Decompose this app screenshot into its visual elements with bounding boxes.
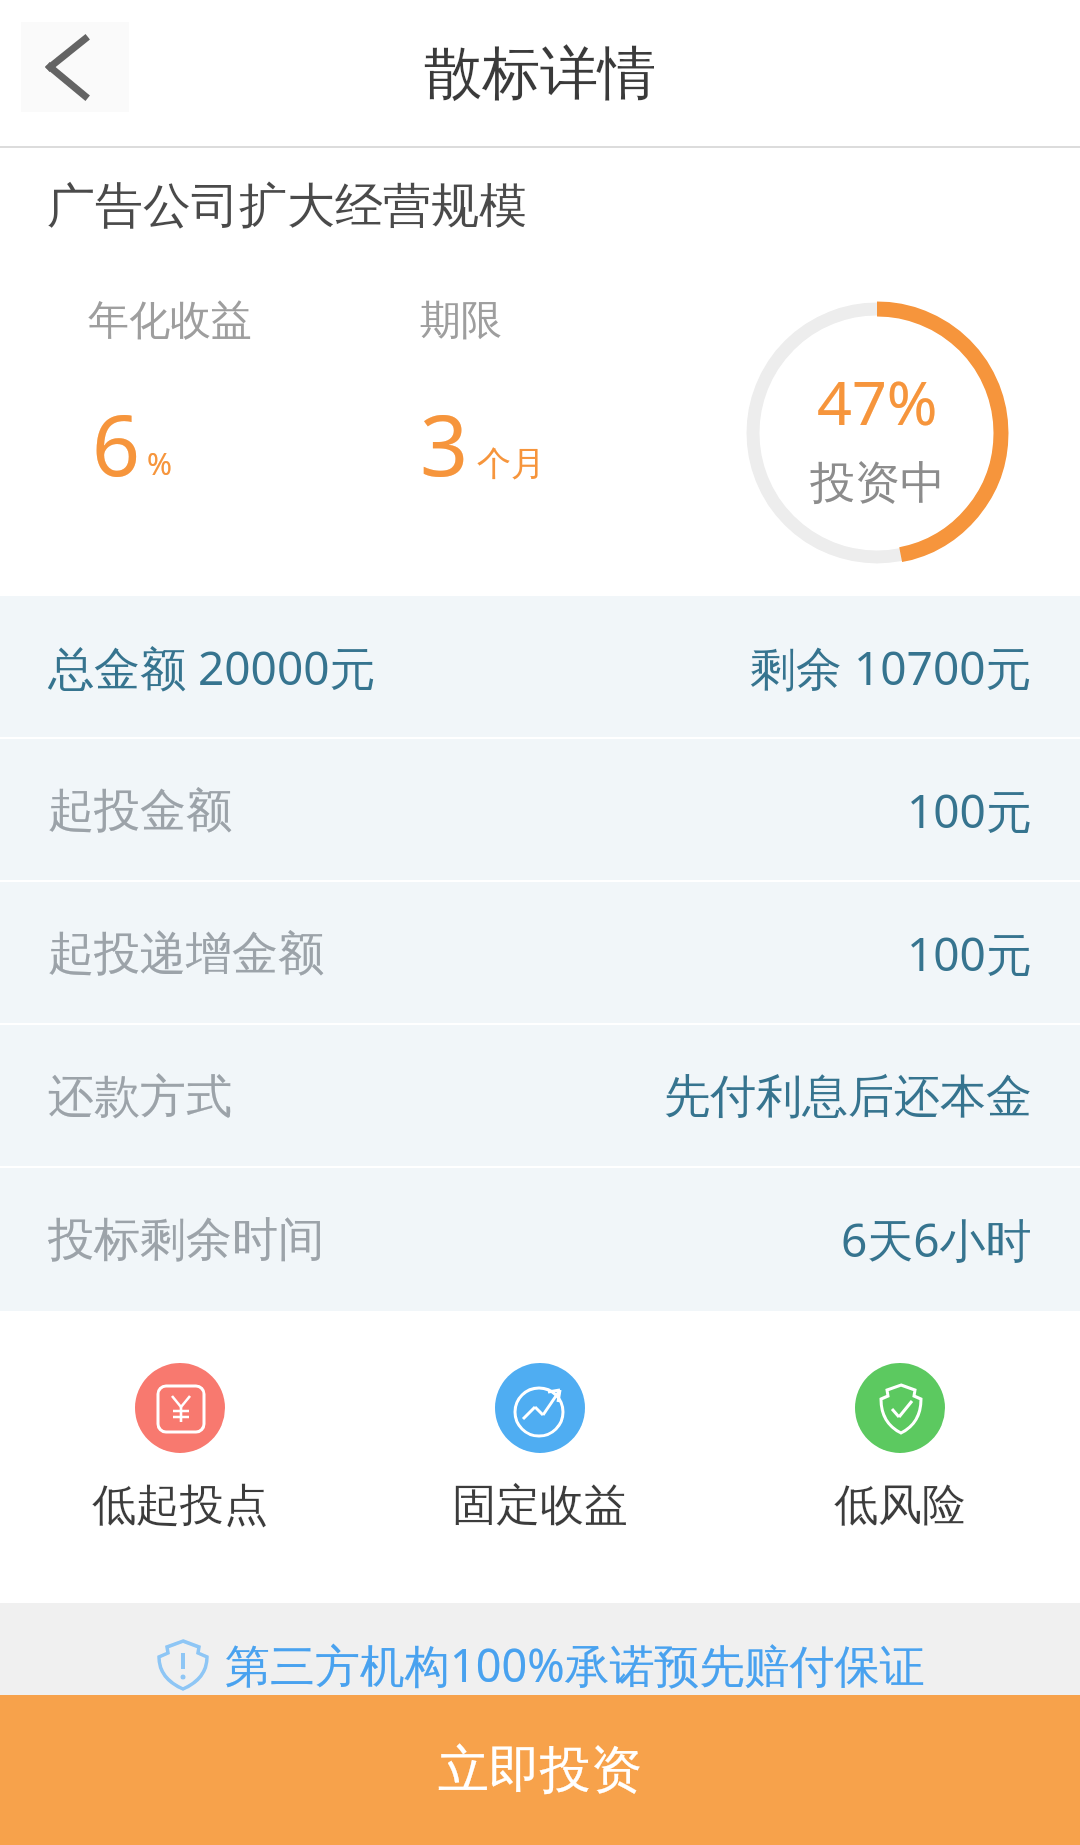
staticText: 起投金额 bbox=[48, 782, 232, 840]
button[interactable]: 立即投资 bbox=[0, 1695, 1080, 1845]
staticText: % bbox=[147, 443, 172, 484]
button[interactable]: 总金额 20000元 bbox=[0, 596, 1080, 739]
staticText: 低起投点 bbox=[92, 1478, 268, 1533]
staticText: 立即投资 bbox=[438, 1738, 642, 1802]
button[interactable]: 投标剩余时间 bbox=[0, 1168, 1080, 1311]
staticText: 期限 bbox=[420, 295, 502, 347]
staticText: 还款方式 bbox=[48, 1068, 232, 1126]
button[interactable] bbox=[21, 22, 129, 112]
staticText: 投标剩余时间 bbox=[48, 1211, 324, 1269]
staticText: 低风险 bbox=[834, 1478, 966, 1533]
button[interactable]: 第三方机构100%承诺预先赔付保证 bbox=[0, 1603, 1080, 1695]
staticText: 100元 bbox=[907, 779, 1032, 842]
button[interactable]: 低起投点 bbox=[0, 1363, 360, 1533]
staticText: 起投递增金额 bbox=[48, 925, 324, 983]
button[interactable]: 起投递增金额 bbox=[0, 882, 1080, 1025]
staticText: 固定收益 bbox=[452, 1478, 628, 1533]
staticText: 第三方机构100%承诺预先赔付保证 bbox=[225, 1634, 925, 1695]
button[interactable]: 低风险 bbox=[720, 1363, 1080, 1533]
staticText: 总金额 20000元 bbox=[48, 636, 376, 699]
staticText: 100元 bbox=[907, 922, 1032, 985]
staticText: 剩余 10700元 bbox=[750, 636, 1032, 699]
button[interactable]: 起投金额 bbox=[0, 739, 1080, 882]
staticText: 6 bbox=[92, 386, 141, 500]
staticText: 广告公司扩大经营规模 bbox=[47, 176, 527, 236]
button[interactable]: 还款方式 bbox=[0, 1025, 1080, 1168]
staticText: 年化收益 bbox=[88, 295, 252, 347]
staticText: 投资中 bbox=[810, 455, 945, 512]
staticText: 散标详情 bbox=[424, 37, 656, 110]
staticText: 6天6小时 bbox=[841, 1208, 1032, 1271]
staticText: 个月 bbox=[477, 442, 545, 485]
staticText: 先付利息后还本金 bbox=[664, 1068, 1032, 1126]
button[interactable]: 固定收益 bbox=[360, 1363, 720, 1533]
staticText: 3 bbox=[420, 386, 469, 500]
staticText: 47% bbox=[817, 360, 938, 443]
